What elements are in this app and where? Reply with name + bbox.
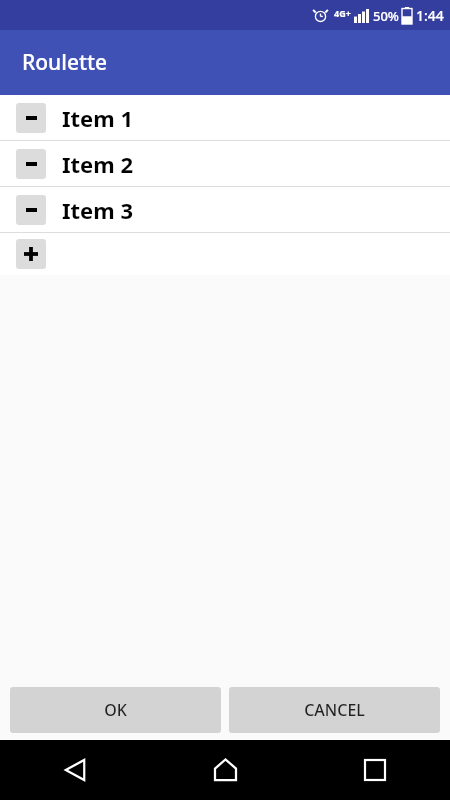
button[interactable]: OK [10,687,221,733]
staticText: CANCEL [304,699,365,721]
staticText: Item 2 [62,149,133,179]
staticText: Roulette [22,48,108,77]
button[interactable]: Back [0,740,150,800]
button[interactable]: Remove item [16,149,46,179]
staticText: 1:44 [416,6,444,25]
button[interactable]: Home [150,740,300,800]
staticText: Item 3 [62,195,133,225]
button[interactable]: Remove item [16,103,46,133]
button[interactable]: Remove item [16,195,46,225]
button[interactable]: Remove item [0,141,450,186]
staticText: 4G+ [334,7,351,19]
staticText: Item 1 [62,103,133,133]
button[interactable]: Add item [16,239,46,269]
button[interactable]: Recent apps [300,740,450,800]
button[interactable]: Remove item [0,95,450,140]
staticText: 50% [373,7,399,25]
button[interactable]: Remove item [0,187,450,232]
staticText: OK [104,699,127,721]
button[interactable]: CANCEL [229,687,440,733]
